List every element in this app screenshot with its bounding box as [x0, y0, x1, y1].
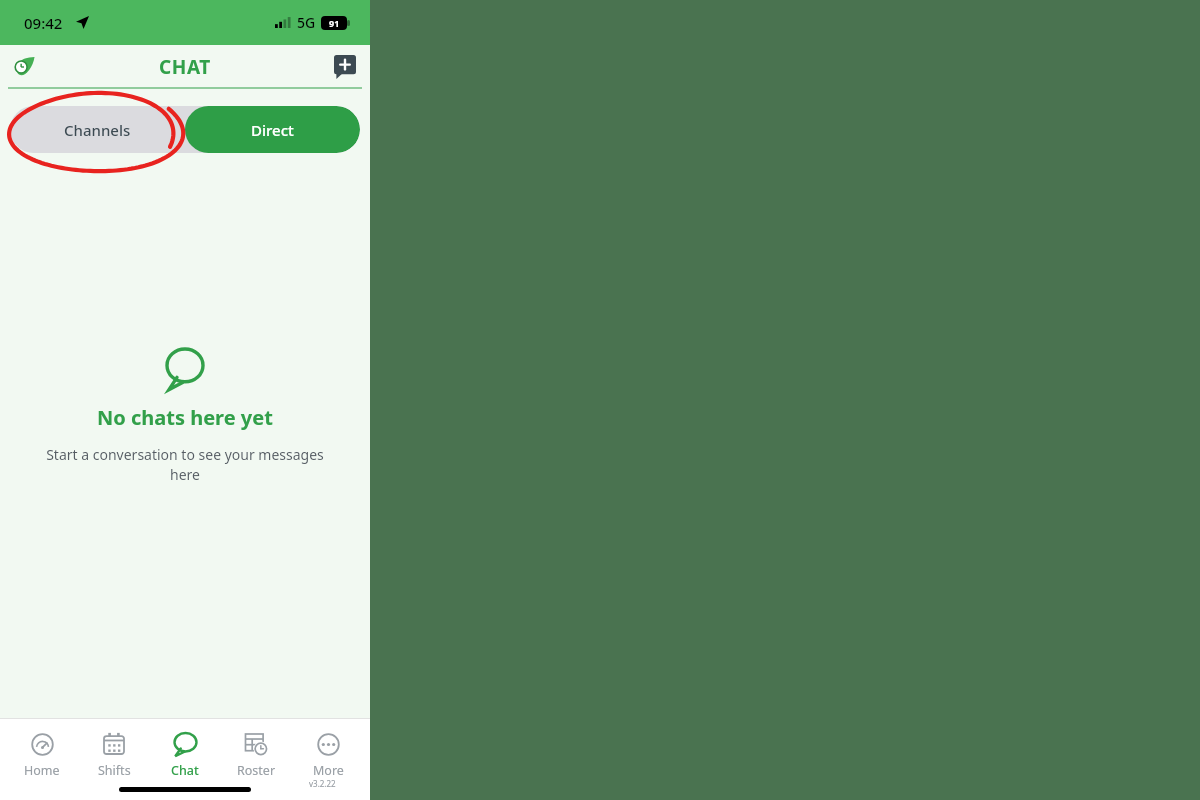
staticText: Home [24, 762, 60, 779]
button[interactable]: Chat [156, 729, 214, 781]
staticText: Start a conversation to see your message… [40, 445, 330, 485]
button[interactable]: New chat [332, 54, 358, 80]
button[interactable]: Timesheets [8, 51, 40, 83]
staticText: CHAT [159, 54, 211, 80]
staticText: 5G [297, 13, 316, 32]
staticText: Chat [171, 762, 199, 779]
staticText: v3.2.22 [309, 778, 336, 789]
button[interactable]: Home [13, 729, 71, 781]
staticText: Shifts [98, 762, 131, 779]
button[interactable]: Roster [227, 729, 285, 781]
button[interactable]: More [299, 729, 357, 781]
staticText: No chats here yet [97, 404, 273, 431]
staticText: Channels [64, 120, 131, 140]
button[interactable]: Shifts [85, 729, 143, 781]
button[interactable]: Channels [10, 106, 185, 153]
staticText: 09:42 [24, 13, 63, 33]
staticText: More [313, 762, 344, 779]
staticText: Roster [237, 762, 276, 779]
staticText: Direct [251, 120, 294, 140]
button[interactable]: Direct [185, 106, 360, 153]
staticText: 91 [329, 17, 340, 29]
